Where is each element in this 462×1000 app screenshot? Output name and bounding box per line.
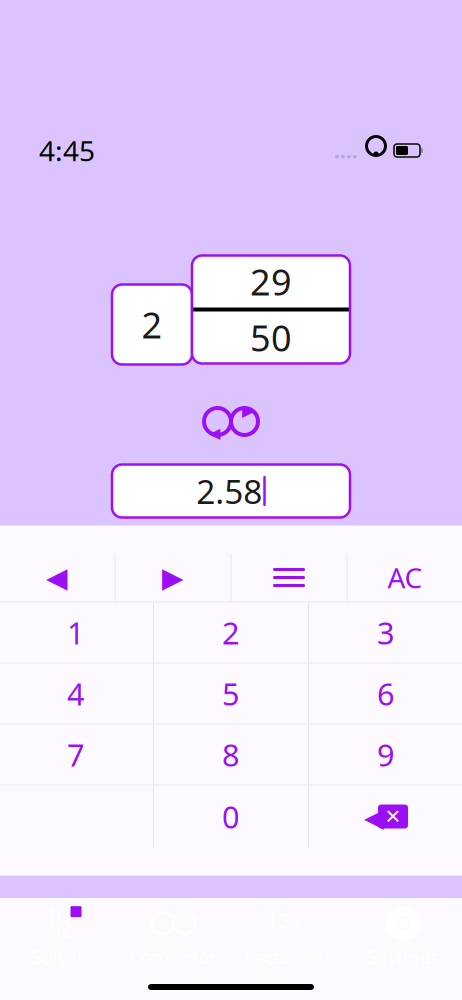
button[interactable]: Swap — [204, 398, 258, 444]
button[interactable]: 0 — [154, 785, 308, 847]
staticText: 2.58 — [196, 469, 262, 513]
button[interactable]: 50 — [192, 311, 350, 363]
staticText: 6 — [377, 673, 395, 714]
staticText: 50 — [250, 314, 292, 361]
button[interactable]: Menu — [231, 553, 346, 601]
button[interactable]: 1 — [1, 905, 116, 969]
staticText: ▶ — [162, 562, 184, 593]
button[interactable]: 1 — [0, 602, 153, 662]
button[interactable]: 4 — [0, 663, 153, 723]
staticText: 4:45 — [39, 132, 95, 169]
button[interactable]: 9 — [309, 724, 462, 784]
staticText: .... — [334, 137, 358, 164]
staticText: 4 — [67, 673, 85, 714]
button[interactable]: AC — [347, 553, 462, 601]
staticText: 1 — [67, 612, 85, 653]
staticText: 5 — [222, 673, 240, 714]
button[interactable]: 2 — [154, 602, 308, 662]
staticText: 2 — [141, 301, 162, 348]
button[interactable]: Move right — [115, 553, 230, 601]
button[interactable]: 2 — [112, 284, 192, 364]
staticText: 2 — [222, 612, 240, 653]
button[interactable]: 8 — [154, 724, 308, 784]
staticText: ▸ — [242, 398, 253, 423]
staticText: 9 — [377, 734, 395, 775]
button[interactable]: Move left — [0, 553, 114, 601]
button[interactable]: 2.58 — [112, 464, 350, 517]
button[interactable]: Delete — [309, 785, 462, 847]
staticText: ◀ — [46, 562, 68, 593]
button[interactable]: 29 — [192, 255, 350, 307]
staticText: 2 — [59, 914, 72, 944]
button[interactable]: 7 — [0, 724, 153, 784]
staticText: 0 — [222, 796, 240, 837]
staticText: 29 — [250, 258, 292, 305]
staticText: AC — [387, 559, 422, 596]
staticText: 8 — [222, 734, 240, 775]
staticText: ✕ — [384, 805, 401, 828]
staticText: ◂ — [364, 794, 384, 839]
button[interactable]: 3 — [309, 602, 462, 662]
staticText: 3 — [377, 612, 395, 653]
staticText: 7 — [67, 734, 85, 775]
staticText: ◂ — [209, 420, 220, 445]
button[interactable]: 5 — [154, 663, 308, 723]
button[interactable]: 6 — [309, 663, 462, 723]
